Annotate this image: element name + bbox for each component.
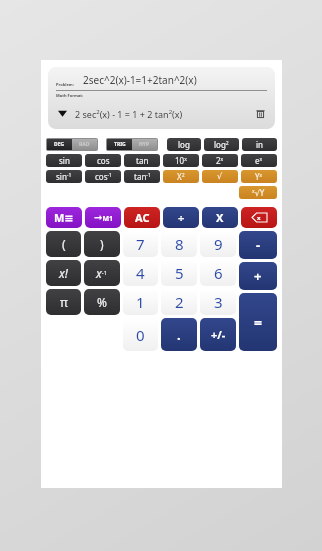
staticText: HYP: [139, 141, 150, 148]
staticText: DEG: [54, 141, 65, 148]
staticText: 2: [175, 292, 184, 312]
button[interactable]: M≡: [46, 207, 82, 228]
button[interactable]: Show history: [56, 107, 69, 120]
staticText: +/-: [211, 327, 226, 342]
button[interactable]: x-1: [84, 260, 120, 286]
staticText: x-1: [96, 265, 108, 281]
staticText: 4: [136, 263, 145, 283]
button[interactable]: 4: [123, 260, 158, 286]
staticText: =: [254, 313, 263, 332]
staticText: RAD: [79, 141, 90, 148]
staticText: Problem:: [56, 82, 74, 87]
staticText: +: [254, 267, 262, 285]
staticText: ex: [255, 155, 263, 166]
button[interactable]: ): [84, 231, 120, 257]
button[interactable]: 9: [200, 231, 236, 257]
staticText: Math Format:: [56, 93, 84, 98]
staticText: X2: [177, 171, 185, 182]
button[interactable]: +/-: [200, 318, 236, 351]
staticText: -: [256, 236, 261, 254]
button[interactable]: Yx: [241, 170, 277, 183]
button[interactable]: log: [167, 138, 201, 151]
button[interactable]: π: [46, 289, 81, 315]
staticText: 2x: [216, 155, 224, 166]
button[interactable]: ex: [241, 154, 277, 167]
staticText: (: [62, 236, 66, 252]
button[interactable]: 3: [200, 289, 236, 315]
staticText: TRIG: [114, 141, 126, 148]
button[interactable]: 6: [200, 260, 236, 286]
staticText: x√Y: [252, 187, 265, 198]
staticText: sin-1: [56, 171, 72, 182]
staticText: 2sec^2(x)-1=1+2tan^2(x): [83, 73, 197, 87]
button[interactable]: 1: [123, 289, 158, 315]
button[interactable]: DEG: [47, 139, 97, 150]
button[interactable]: 8: [161, 231, 197, 257]
button[interactable]: Backspace: [241, 207, 277, 228]
button[interactable]: cos: [85, 154, 121, 167]
staticText: tan-1: [134, 171, 151, 182]
staticText: 10x: [175, 155, 187, 166]
button[interactable]: X2: [163, 170, 199, 183]
staticText: .: [177, 326, 181, 344]
staticText: 2 sec2(x) - 1 = 1 + 2 tan2(x): [75, 108, 183, 120]
button[interactable]: AC: [124, 207, 160, 228]
staticText: ➞M1: [94, 212, 113, 224]
staticText: X: [216, 210, 224, 225]
staticText: x: [257, 214, 261, 222]
button[interactable]: 0: [123, 318, 158, 351]
staticText: x!: [59, 265, 68, 281]
button[interactable]: TRIG: [107, 139, 157, 150]
staticText: √: [217, 172, 223, 181]
staticText: 7: [136, 234, 145, 254]
button[interactable]: x√Y: [239, 186, 277, 199]
button[interactable]: 10x: [163, 154, 199, 167]
staticText: π: [60, 294, 68, 310]
button[interactable]: .: [161, 318, 197, 351]
button[interactable]: 7: [123, 231, 158, 257]
staticText: tan: [136, 155, 149, 166]
staticText: ): [100, 236, 104, 252]
button[interactable]: %: [84, 289, 120, 315]
staticText: M≡: [54, 210, 74, 225]
button[interactable]: in: [242, 138, 277, 151]
staticText: in: [256, 139, 264, 150]
button[interactable]: x!: [46, 260, 81, 286]
button[interactable]: cos-1: [85, 170, 121, 183]
button[interactable]: sin: [46, 154, 82, 167]
button[interactable]: X: [202, 207, 238, 228]
staticText: 9: [214, 234, 223, 254]
staticText: Yx: [255, 171, 263, 182]
button[interactable]: +: [239, 262, 277, 290]
staticText: %: [97, 294, 107, 310]
staticText: log2: [214, 139, 229, 150]
staticText: cos-1: [95, 171, 112, 182]
staticText: 0: [136, 325, 145, 345]
button[interactable]: 5: [161, 260, 197, 286]
button[interactable]: -: [239, 231, 277, 259]
button[interactable]: tan-1: [124, 170, 160, 183]
button[interactable]: 2: [161, 289, 197, 315]
staticText: 3: [214, 292, 223, 312]
staticText: AC: [135, 210, 150, 225]
button[interactable]: (: [46, 231, 81, 257]
staticText: ÷: [178, 210, 185, 225]
staticText: 1: [136, 292, 145, 312]
button[interactable]: log2: [204, 138, 239, 151]
staticText: 8: [175, 234, 184, 254]
staticText: log: [178, 139, 190, 150]
button[interactable]: sin-1: [46, 170, 82, 183]
staticText: sin: [59, 155, 70, 166]
button[interactable]: √: [202, 170, 238, 183]
button[interactable]: ➞M1: [85, 207, 121, 228]
button[interactable]: =: [239, 293, 277, 351]
button[interactable]: 2x: [202, 154, 238, 167]
button[interactable]: tan: [124, 154, 160, 167]
staticText: 6: [214, 263, 223, 283]
button[interactable]: Delete: [254, 107, 267, 120]
staticText: 5: [175, 263, 184, 283]
staticText: cos: [97, 155, 110, 166]
button[interactable]: Problem:: [48, 67, 275, 129]
button[interactable]: ÷: [163, 207, 199, 228]
